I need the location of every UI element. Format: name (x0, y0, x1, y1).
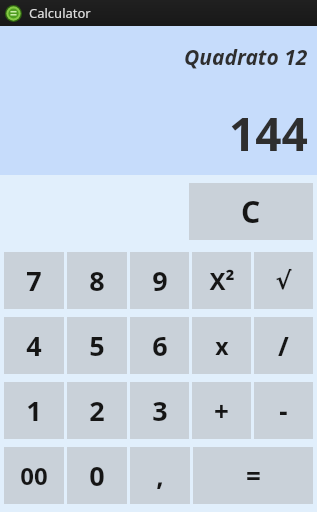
button[interactable]: C (189, 183, 313, 240)
button[interactable]: 7 (4, 252, 64, 309)
button[interactable]: x (192, 317, 251, 374)
button[interactable]: = (193, 447, 313, 504)
staticText: 5 (89, 327, 105, 364)
staticText: / (278, 328, 289, 363)
staticText: , (156, 458, 164, 493)
staticText: 6 (152, 327, 168, 364)
staticText: = (246, 458, 261, 493)
staticText: 8 (89, 262, 105, 299)
button[interactable]: 3 (130, 382, 189, 439)
staticText: - (279, 393, 288, 428)
button[interactable]: 1 (4, 382, 64, 439)
button[interactable]: 8 (67, 252, 127, 309)
staticText: 2 (89, 392, 105, 429)
button[interactable]: √ (254, 252, 313, 309)
button[interactable]: / (254, 317, 313, 374)
staticText: x (215, 330, 229, 361)
button[interactable]: 4 (4, 317, 64, 374)
button[interactable]: - (254, 382, 313, 439)
staticText: 0 (89, 457, 105, 494)
staticText: 3 (152, 392, 168, 429)
button[interactable]: 6 (130, 317, 189, 374)
button[interactable]: , (130, 447, 190, 504)
staticText: 00 (20, 459, 48, 492)
staticText: 144 (229, 102, 308, 165)
staticText: X² (209, 264, 235, 297)
button[interactable]: 0 (67, 447, 127, 504)
staticText: √ (275, 267, 292, 295)
button[interactable]: 9 (130, 252, 189, 309)
staticText: 9 (152, 262, 168, 299)
staticText: Quadrato 12 (184, 43, 308, 72)
button[interactable]: 00 (4, 447, 64, 504)
staticText: + (214, 393, 229, 428)
button[interactable]: 5 (67, 317, 127, 374)
staticText: C (241, 191, 261, 232)
staticText: 1 (26, 392, 42, 429)
staticText: Calculator (29, 4, 91, 22)
staticText: 7 (26, 262, 42, 299)
staticText: 4 (26, 327, 42, 364)
button[interactable]: X² (192, 252, 251, 309)
button[interactable]: 2 (67, 382, 127, 439)
button[interactable]: + (192, 382, 251, 439)
